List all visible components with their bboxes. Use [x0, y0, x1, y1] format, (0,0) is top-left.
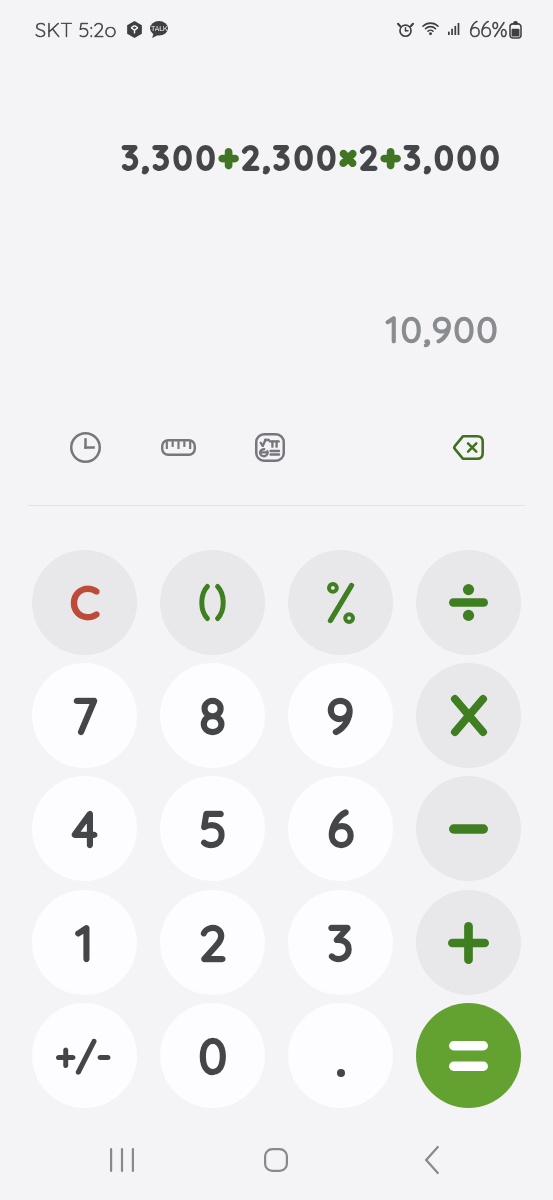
- staticText: +: [382, 138, 404, 177]
- button[interactable]: Percent: [288, 550, 393, 655]
- staticText: +: [220, 138, 242, 177]
- staticText: 4: [73, 799, 97, 858]
- staticText: 3,300: [122, 138, 220, 177]
- button[interactable]: 1: [32, 890, 137, 995]
- staticText: 3: [328, 913, 353, 972]
- staticText: +: [220, 138, 242, 177]
- staticText: 3,300: [122, 138, 220, 177]
- staticText: 8: [200, 686, 226, 745]
- staticText: 2: [360, 138, 382, 177]
- button[interactable]: Back: [402, 1136, 462, 1184]
- staticText: 66%: [469, 16, 508, 42]
- button[interactable]: Plus: [416, 890, 521, 995]
- button[interactable]: Parentheses: [160, 550, 265, 655]
- staticText: 3: [328, 913, 353, 972]
- button[interactable]: Recent apps: [92, 1136, 152, 1184]
- staticText: 10,900: [386, 307, 500, 351]
- staticText: 1: [76, 913, 94, 972]
- button[interactable]: 4: [32, 776, 137, 881]
- staticText: 7: [73, 686, 97, 745]
- button[interactable]: C: [32, 550, 137, 655]
- staticText: ×: [341, 138, 360, 177]
- button[interactable]: 5: [160, 776, 265, 881]
- staticText: 7: [73, 686, 97, 745]
- button[interactable]: History: [55, 417, 115, 477]
- staticText: 2: [360, 138, 382, 177]
- button[interactable]: 3: [288, 890, 393, 995]
- staticText: SKT 5:2o: [35, 17, 117, 42]
- button[interactable]: Backspace: [438, 417, 498, 477]
- staticText: 2: [200, 913, 226, 972]
- button[interactable]: 6: [288, 776, 393, 881]
- button[interactable]: 2: [160, 890, 265, 995]
- button[interactable]: Equals: [416, 1003, 521, 1108]
- staticText: ×: [341, 138, 360, 177]
- staticText: 6: [328, 799, 354, 858]
- staticText: 6: [328, 799, 354, 858]
- staticText: 9: [327, 686, 354, 745]
- button[interactable]: Multiply: [416, 663, 521, 768]
- staticText: 3,000: [404, 138, 504, 177]
- button[interactable]: Unit converter: [148, 417, 208, 477]
- staticText: 0: [199, 1026, 227, 1085]
- staticText: TALK: [151, 24, 168, 33]
- staticText: 10,900: [386, 307, 500, 351]
- staticText: +/-: [56, 1034, 113, 1078]
- staticText: 2,300: [242, 138, 341, 177]
- button[interactable]: 9: [288, 663, 393, 768]
- button[interactable]: 0: [160, 1003, 265, 1108]
- staticText: C: [71, 576, 99, 629]
- button[interactable]: +/-: [32, 1003, 137, 1108]
- staticText: 2,300: [242, 138, 341, 177]
- staticText: +/-: [56, 1034, 113, 1078]
- button[interactable]: Minus: [416, 776, 521, 881]
- staticText: 4: [73, 799, 97, 858]
- staticText: 5: [200, 799, 226, 858]
- button[interactable]: 7: [32, 663, 137, 768]
- staticText: 0: [199, 1026, 227, 1085]
- button[interactable]: Home: [246, 1136, 306, 1184]
- button[interactable]: Decimal point: [288, 1003, 393, 1108]
- staticText: 66%: [469, 16, 508, 42]
- staticText: 5: [200, 799, 226, 858]
- staticText: SKT 5:2o: [35, 17, 117, 42]
- staticText: 9: [327, 686, 354, 745]
- staticText: C: [71, 576, 99, 629]
- button[interactable]: 8: [160, 663, 265, 768]
- staticText: 3,000: [404, 138, 504, 177]
- staticText: +: [382, 138, 404, 177]
- button[interactable]: Divide: [416, 550, 521, 655]
- staticText: 2: [200, 913, 226, 972]
- button[interactable]: Scientific calculator: [240, 417, 300, 477]
- staticText: 8: [200, 686, 226, 745]
- staticText: 1: [76, 913, 94, 972]
